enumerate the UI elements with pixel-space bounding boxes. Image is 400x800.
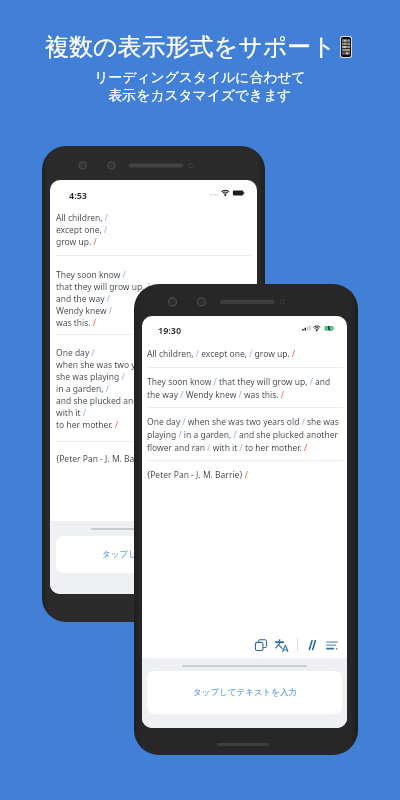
staticText: grow up. / — [56, 236, 97, 248]
staticText: and she plucked another flower and ran / — [56, 395, 221, 407]
staticText: to her mother. / — [56, 419, 119, 431]
staticText: with it / — [56, 407, 87, 419]
button[interactable]: Line layout — [325, 638, 339, 652]
staticText: except one, / — [56, 224, 108, 236]
staticText: One day / when she was two years old / s… — [147, 416, 343, 453]
staticText: 複数の表示形式をサポート — [45, 32, 336, 62]
button[interactable]: タップしてテキストを入力 — [56, 536, 251, 573]
staticText: that they will grow up, / — [56, 281, 150, 293]
staticText: タップしてテキストを入力 — [193, 687, 297, 698]
button[interactable]: Slash separators — [305, 638, 319, 652]
staticText: One day / — [56, 347, 95, 359]
staticText: リーディングスタイルに合わせて 表示をカスタマイズできます — [0, 69, 400, 105]
staticText: タップしてテキストを入力 — [102, 549, 206, 560]
button[interactable]: タップしてテキストを入力 — [147, 671, 342, 714]
staticText: in a garden, / — [56, 383, 109, 395]
staticText: she was playing / — [56, 371, 125, 383]
staticText: and the way / — [56, 293, 110, 305]
staticText: All children, / except one, / grow up. / — [147, 348, 296, 360]
button[interactable]: Copy — [254, 638, 268, 652]
staticText: {Peter Pan - J. M. Barrie} / — [56, 453, 157, 465]
staticText: Wendy knew / — [56, 305, 113, 317]
staticText: 19:30 — [158, 324, 182, 336]
button[interactable]: Translate — [274, 638, 288, 652]
staticText: {Peter Pan - J. M. Barrie} / — [147, 469, 248, 481]
staticText: when she was two years old / — [56, 359, 173, 371]
staticText: They soon know / that they will grow up,… — [147, 376, 343, 400]
staticText: was this. / — [56, 317, 96, 329]
staticText: All children, / — [56, 212, 109, 224]
staticText: 4:53 — [69, 189, 87, 201]
staticText: They soon know / — [56, 269, 126, 281]
